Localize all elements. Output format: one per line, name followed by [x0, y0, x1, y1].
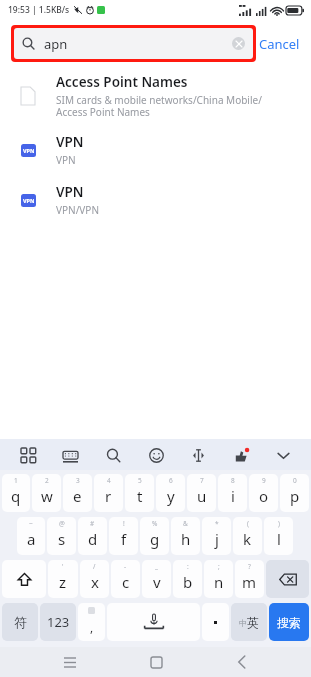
staticText: 3: [76, 476, 80, 485]
staticText: ,: [90, 619, 94, 635]
button[interactable]: Backspace: [266, 560, 309, 598]
button[interactable]: VPN: [0, 125, 311, 175]
staticText: 中: [239, 618, 247, 628]
button[interactable]: Text edit: [183, 440, 213, 470]
staticText: s: [58, 529, 66, 549]
staticText: (: [247, 519, 249, 528]
button[interactable]: 8: [218, 474, 247, 512]
staticText: VPN: [23, 147, 35, 154]
staticText: !: [123, 519, 125, 528]
button[interactable]: Back: [225, 647, 259, 677]
button[interactable]: Search: [98, 440, 128, 470]
staticText: 搜索: [277, 615, 301, 630]
staticText: t: [137, 486, 143, 506]
button[interactable]: 中: [231, 603, 267, 641]
button[interactable]: ~: [17, 517, 45, 555]
button[interactable]: 9: [249, 474, 278, 512]
button[interactable]: ): [264, 517, 293, 555]
button[interactable]: Stickers: [226, 440, 256, 470]
button[interactable]: Space: [107, 603, 200, 641]
staticText: f: [121, 529, 127, 549]
staticText: m: [242, 572, 257, 592]
staticText: e: [73, 486, 82, 506]
button[interactable]: #: [78, 517, 107, 555]
other: Search: [22, 37, 35, 50]
staticText: l: [277, 529, 281, 549]
staticText: _: [155, 562, 158, 571]
button[interactable]: Cancel: [256, 29, 303, 59]
button[interactable]: 5: [125, 474, 154, 512]
staticText: VPN/VPN: [56, 203, 100, 217]
button[interactable]: Apps: [13, 440, 43, 470]
staticText: y: [167, 486, 175, 506]
button[interactable]: Access Point Names: [0, 67, 311, 125]
staticText: ?: [248, 562, 251, 571]
button[interactable]: 3: [63, 474, 92, 512]
staticText: x: [91, 572, 99, 592]
button[interactable]: ;: [204, 560, 233, 598]
button[interactable]: Recent apps: [53, 647, 87, 677]
staticText: 5: [138, 476, 142, 485]
staticText: ': [62, 562, 64, 571]
button[interactable]: 4: [94, 474, 123, 512]
staticText: /: [93, 562, 96, 571]
staticText: 4: [107, 476, 111, 485]
button[interactable]: Search: [14, 28, 253, 59]
button[interactable]: _: [142, 560, 171, 598]
staticText: i: [231, 486, 235, 506]
staticText: 1: [14, 476, 18, 485]
staticText: b: [183, 572, 193, 592]
button[interactable]: %: [140, 517, 169, 555]
button[interactable]: 搜索: [269, 603, 309, 641]
staticText: ~: [29, 519, 33, 528]
staticText: -: [124, 562, 127, 571]
staticText: 符: [14, 614, 27, 630]
staticText: q: [11, 486, 21, 506]
staticText: @: [59, 519, 65, 528]
staticText: 0: [293, 476, 297, 485]
staticText: r: [105, 486, 112, 506]
button[interactable]: Shift: [2, 560, 46, 598]
button[interactable]: Period: [202, 603, 229, 641]
staticText: Access Point Names: [56, 73, 188, 91]
staticText: 6: [169, 476, 173, 485]
button[interactable]: !: [109, 517, 138, 555]
button[interactable]: 1: [2, 474, 30, 512]
staticText: SIM cards & mobile networks/China Mobile…: [56, 93, 262, 119]
staticText: VPN: [56, 183, 84, 201]
staticText: g: [150, 529, 160, 549]
button[interactable]: Comma: [78, 603, 105, 641]
staticText: 9: [262, 476, 266, 485]
staticText: z: [59, 572, 67, 592]
button[interactable]: Clear text: [232, 37, 245, 50]
staticText: v: [153, 572, 161, 592]
button[interactable]: Emoji: [141, 440, 171, 470]
button[interactable]: 符: [2, 603, 38, 641]
button[interactable]: @: [47, 517, 76, 555]
button[interactable]: Keyboard layout: [55, 440, 85, 470]
staticText: VPN: [23, 197, 35, 204]
button[interactable]: -: [111, 560, 140, 598]
button[interactable]: :: [173, 560, 202, 598]
button[interactable]: 6: [156, 474, 185, 512]
button[interactable]: VPN: [0, 175, 311, 225]
button[interactable]: &: [171, 517, 200, 555]
staticText: p: [290, 486, 300, 506]
staticText: %: [152, 519, 158, 528]
button[interactable]: 123: [40, 603, 76, 641]
button[interactable]: ': [48, 560, 78, 598]
button[interactable]: Home: [139, 647, 173, 677]
button[interactable]: 2: [32, 474, 61, 512]
staticText: h: [181, 529, 191, 549]
staticText: Cancel: [259, 35, 300, 53]
button[interactable]: *: [202, 517, 231, 555]
button[interactable]: 7: [187, 474, 216, 512]
button[interactable]: Collapse keyboard: [268, 440, 298, 470]
staticText: w: [41, 486, 53, 506]
button[interactable]: 0: [280, 474, 309, 512]
button[interactable]: ?: [235, 560, 264, 598]
button[interactable]: (: [233, 517, 262, 555]
staticText: #: [90, 519, 95, 528]
staticText: *: [215, 519, 219, 528]
button[interactable]: /: [80, 560, 109, 598]
